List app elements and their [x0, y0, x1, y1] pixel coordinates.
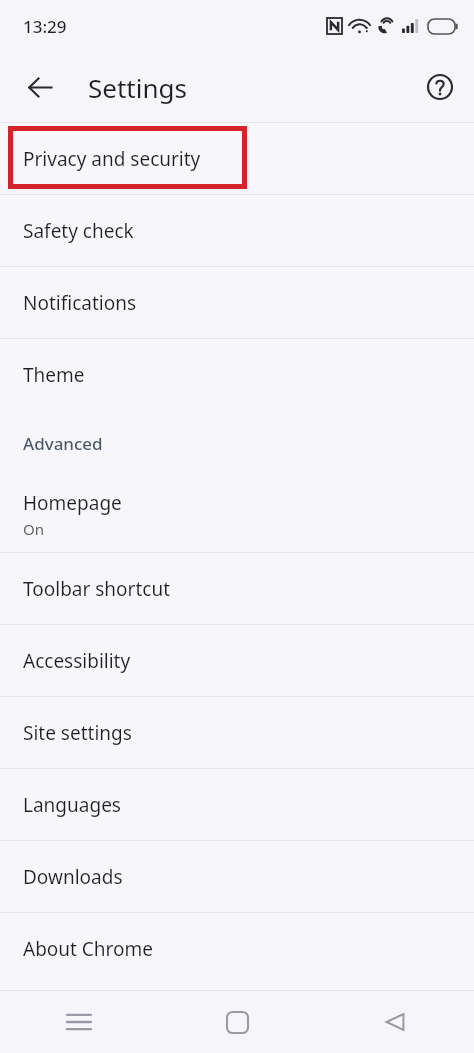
button[interactable]: Theme — [0, 339, 474, 410]
staticText: Toolbar shortcut — [23, 576, 171, 602]
staticText: On — [23, 519, 44, 539]
button[interactable]: Back — [316, 991, 474, 1053]
staticText: Homepage — [23, 490, 122, 516]
button[interactable]: Languages — [0, 769, 474, 840]
button[interactable]: Recent apps — [0, 991, 158, 1053]
staticText: 13:29 — [23, 15, 67, 38]
staticText: Site settings — [23, 720, 132, 746]
button[interactable]: Help — [416, 63, 464, 111]
staticText: Accessibility — [23, 648, 131, 674]
staticText: Languages — [23, 792, 121, 818]
button[interactable]: Privacy and security — [0, 123, 474, 194]
staticText: Theme — [23, 362, 85, 388]
button[interactable]: Homepage — [0, 476, 474, 552]
staticText: Downloads — [23, 864, 123, 890]
staticText: Advanced — [23, 432, 103, 455]
staticText: Settings — [88, 70, 187, 105]
button[interactable]: Site settings — [0, 697, 474, 768]
staticText: Notifications — [23, 290, 137, 316]
button[interactable]: Downloads — [0, 841, 474, 912]
staticText: About Chrome — [23, 936, 154, 962]
button[interactable]: Home — [158, 991, 316, 1053]
button[interactable]: Back — [16, 63, 64, 111]
button[interactable]: Notifications — [0, 267, 474, 338]
staticText: Privacy and security — [23, 146, 201, 172]
button[interactable]: Toolbar shortcut — [0, 553, 474, 624]
button[interactable]: About Chrome — [0, 913, 474, 984]
staticText: Safety check — [23, 218, 134, 244]
button[interactable]: Accessibility — [0, 625, 474, 696]
button[interactable]: Safety check — [0, 195, 474, 266]
